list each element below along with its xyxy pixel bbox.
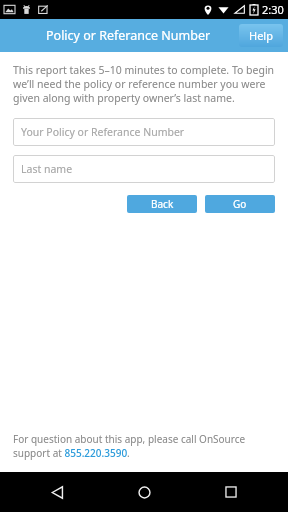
button[interactable]: Back xyxy=(127,195,197,213)
staticText: 2:30 xyxy=(262,2,284,17)
button[interactable]: Help xyxy=(239,24,283,47)
button[interactable]: Last name xyxy=(13,155,275,183)
button[interactable]: Back xyxy=(27,472,87,512)
staticText: Your Policy or Referance Number xyxy=(21,125,185,139)
button[interactable]: Recent apps xyxy=(201,472,261,512)
staticText: Back xyxy=(151,197,174,211)
button[interactable]: Go xyxy=(205,195,275,213)
staticText: Last name xyxy=(21,162,73,176)
button[interactable]: Home xyxy=(114,472,174,512)
staticText: Help xyxy=(249,28,273,43)
staticText: Policy or Referance Number xyxy=(46,27,211,44)
staticText: This report takes 5–10 minutes to comple… xyxy=(13,63,275,105)
button[interactable]: For question about this app, please call… xyxy=(13,432,275,460)
staticText: Go xyxy=(233,197,247,211)
button[interactable]: Your Policy or Referance Number xyxy=(13,118,275,146)
